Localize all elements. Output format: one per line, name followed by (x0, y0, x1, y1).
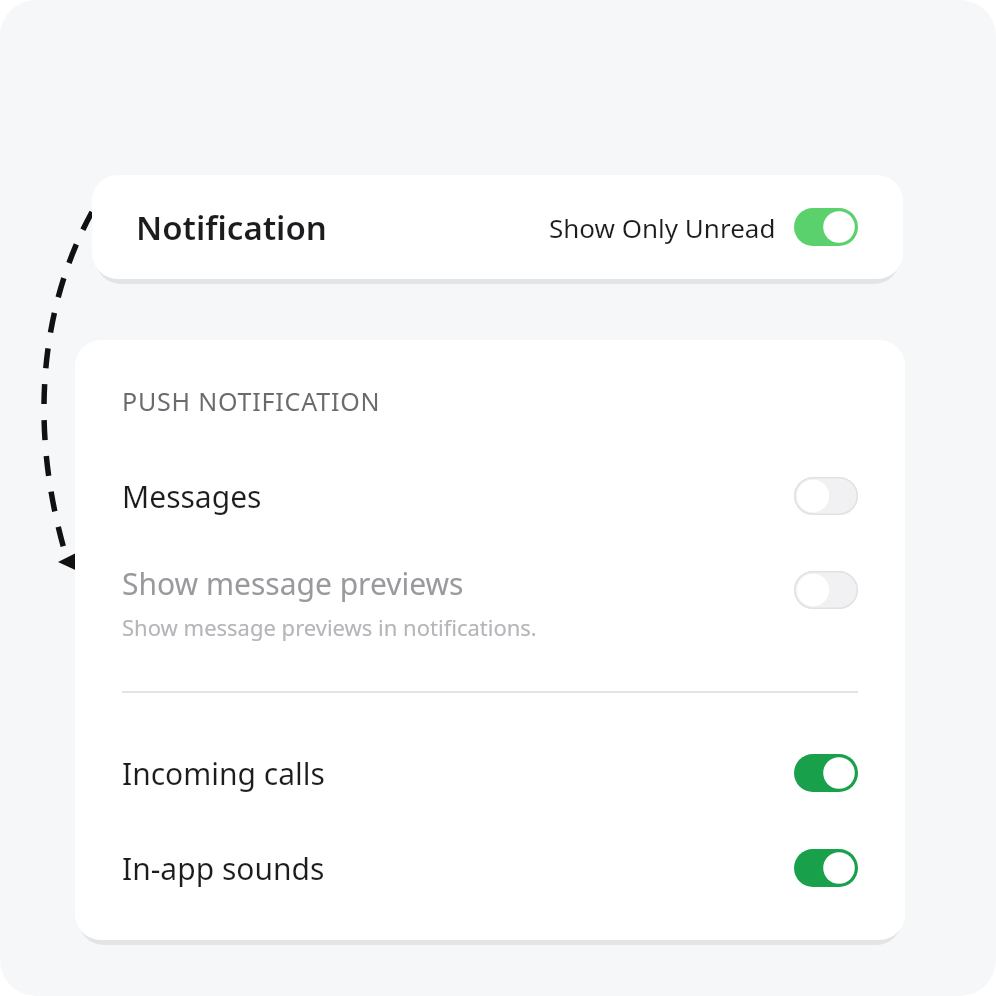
staticText: Show message previews (122, 563, 464, 604)
staticText: Show message previews in notifications. (122, 612, 537, 642)
button[interactable]: Messages (794, 477, 858, 515)
button[interactable]: Show Only Unread (794, 208, 858, 246)
button[interactable]: Notification (92, 175, 903, 279)
staticText: PUSH NOTIFICATION (122, 384, 381, 418)
button[interactable]: Show message previews (75, 554, 905, 650)
staticText: Notification (136, 205, 327, 250)
staticText: Messages (122, 476, 262, 517)
staticText: In-app sounds (122, 848, 325, 889)
button[interactable]: Messages (75, 458, 905, 534)
button[interactable]: In-app sounds (794, 849, 858, 887)
staticText: Show Only Unread (549, 210, 776, 245)
button[interactable]: Incoming calls (794, 754, 858, 792)
button[interactable]: Show message previews (794, 571, 858, 609)
staticText: Incoming calls (122, 753, 325, 794)
button[interactable]: Incoming calls (75, 735, 905, 811)
button[interactable]: In-app sounds (75, 830, 905, 906)
